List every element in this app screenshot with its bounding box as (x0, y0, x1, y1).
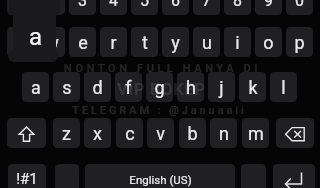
button[interactable]: 5 (131, 0, 158, 15)
button[interactable]: Shift (7, 118, 46, 148)
staticText: b (187, 123, 198, 144)
staticText: t (142, 32, 148, 53)
staticText: r (110, 32, 117, 53)
button[interactable]: Enter (273, 164, 315, 188)
button[interactable]: e (69, 27, 96, 57)
button[interactable]: 3 (69, 0, 96, 15)
button[interactable]: 6 (162, 0, 189, 15)
staticText: 5 (140, 0, 149, 10)
button[interactable]: h (177, 72, 204, 102)
staticText: g (154, 77, 165, 98)
staticText: 7 (202, 0, 211, 10)
staticText: VIP BOKEP (117, 80, 206, 99)
button[interactable]: d (84, 72, 111, 102)
staticText: f (125, 77, 132, 98)
button[interactable]: !#1 (8, 164, 46, 188)
button[interactable]: Backspace (276, 118, 314, 148)
button[interactable]: b (179, 118, 206, 148)
staticText: TELEGRAM : @Januaaii (72, 104, 247, 117)
button[interactable]: k (239, 72, 266, 102)
staticText: 9 (264, 0, 273, 10)
button[interactable]: p (286, 27, 313, 57)
button[interactable]: i (224, 27, 251, 57)
button[interactable]: g (146, 72, 173, 102)
staticText: s (62, 77, 72, 98)
staticText: v (156, 123, 165, 144)
button[interactable]: 7 (193, 0, 220, 15)
staticText: l (281, 77, 286, 98)
staticText: a (31, 77, 41, 98)
button[interactable]: 8 (224, 0, 251, 15)
staticText: English (US) (129, 173, 192, 186)
staticText: 3 (78, 0, 87, 10)
button[interactable]: j (208, 72, 235, 102)
button[interactable]: v (147, 118, 174, 148)
staticText: k (248, 77, 258, 98)
staticText: i (235, 32, 240, 53)
staticText: w (45, 32, 59, 53)
button[interactable]: n (210, 118, 237, 148)
button[interactable]: m (242, 118, 269, 148)
staticText: m (248, 123, 264, 144)
button[interactable]: 2 (38, 0, 65, 15)
button[interactable]: f (115, 72, 142, 102)
staticText: 0 (295, 0, 304, 10)
button[interactable]: l (270, 72, 297, 102)
staticText: d (92, 77, 103, 98)
staticText: u (202, 32, 212, 53)
button[interactable]: t (131, 27, 158, 57)
button[interactable]: o (255, 27, 282, 57)
button[interactable]: y (162, 27, 189, 57)
staticText: n (219, 123, 229, 144)
button[interactable]: 0 (286, 0, 313, 15)
staticText: z (62, 123, 71, 144)
button[interactable]: a (22, 72, 49, 102)
button[interactable]: c (116, 118, 143, 148)
staticText: NONTON FULL HANYA DI (64, 62, 261, 75)
staticText: o (263, 32, 274, 53)
button[interactable]: s (53, 72, 80, 102)
staticText: p (294, 32, 305, 53)
button[interactable]: u (193, 27, 220, 57)
staticText: y (171, 32, 180, 53)
staticText: h (186, 77, 196, 98)
staticText: !#1 (16, 170, 38, 188)
button[interactable]: r (100, 27, 127, 57)
staticText: j (219, 77, 224, 98)
staticText: 4 (109, 0, 118, 10)
staticText: a (29, 23, 43, 51)
button[interactable]: z (53, 118, 80, 148)
staticText: c (125, 123, 135, 144)
button[interactable]: English (US) (85, 164, 235, 188)
button[interactable]: 4 (100, 0, 127, 15)
button[interactable]: 9 (255, 0, 282, 15)
button[interactable]: w (38, 27, 65, 57)
staticText: 8 (233, 0, 242, 10)
staticText: e (78, 32, 88, 53)
button[interactable]: q (7, 27, 34, 57)
button[interactable]: x (84, 118, 111, 148)
staticText: 6 (171, 0, 180, 10)
staticText: x (93, 123, 102, 144)
